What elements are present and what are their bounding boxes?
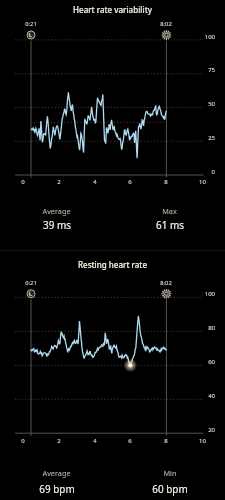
staticText: 50: [208, 100, 215, 108]
staticText: 10: [199, 178, 206, 186]
button[interactable]: [0, 202, 113, 234]
staticText: 8:02: [160, 279, 172, 287]
button[interactable]: Wake up 8:02: [157, 285, 175, 303]
staticText: 39 ms: [43, 218, 71, 231]
staticText: 0:21: [25, 20, 37, 28]
staticText: Max: [162, 206, 177, 216]
staticText: 10: [199, 437, 206, 445]
staticText: 61 ms: [156, 218, 184, 231]
staticText: 100: [204, 290, 215, 298]
button[interactable]: Bedtime 0:21: [22, 26, 40, 44]
staticText: 0:21: [25, 279, 37, 287]
staticText: 0: [211, 168, 215, 176]
staticText: 60: [208, 358, 215, 366]
button[interactable]: [113, 465, 225, 498]
staticText: 25: [208, 134, 215, 142]
staticText: 8:02: [160, 20, 172, 28]
staticText: 8: [164, 437, 168, 445]
staticText: 20: [208, 426, 215, 434]
button[interactable]: [113, 202, 225, 234]
staticText: 6: [128, 437, 132, 445]
staticText: 75: [208, 66, 215, 74]
staticText: 4: [93, 437, 97, 445]
staticText: 4: [93, 178, 97, 186]
staticText: 69 bpm: [39, 482, 75, 495]
staticText: 60 bpm: [152, 482, 188, 495]
button[interactable]: [0, 465, 113, 498]
staticText: Heart rate variability: [73, 4, 152, 15]
staticText: 80: [208, 324, 215, 332]
button[interactable]: Wake up 8:02: [157, 26, 175, 44]
staticText: 8: [164, 178, 168, 186]
staticText: 40: [208, 392, 215, 400]
button[interactable]: Bedtime 0:21: [22, 285, 40, 303]
staticText: 6: [128, 178, 132, 186]
staticText: Average: [42, 206, 71, 216]
staticText: Resting heart rate: [78, 259, 147, 270]
staticText: 2: [57, 437, 61, 445]
staticText: 0: [21, 178, 25, 186]
staticText: 100: [204, 33, 215, 41]
staticText: 2: [57, 178, 61, 186]
staticText: Min: [163, 468, 177, 478]
staticText: 0: [21, 437, 25, 445]
staticText: Average: [42, 468, 71, 478]
